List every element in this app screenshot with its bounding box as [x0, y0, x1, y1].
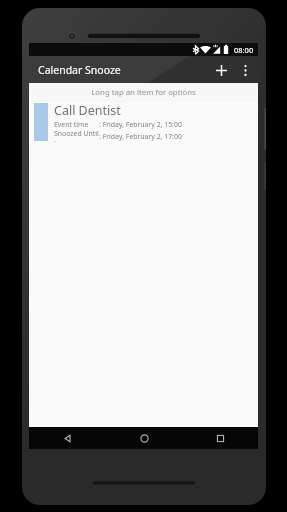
- button[interactable]: Home: [106, 427, 182, 449]
- button[interactable]: More options: [234, 59, 256, 81]
- button[interactable]: Back: [29, 427, 106, 449]
- staticText: : Friday, February 2, 17:00: [99, 132, 182, 141]
- button[interactable]: Add snooze: [208, 57, 234, 83]
- staticText: : Friday, February 2, 15:00: [99, 120, 182, 129]
- staticText: 08:00: [234, 45, 254, 55]
- staticText: Long tap an item for options: [91, 87, 196, 98]
- staticText: Calendar Snooze: [38, 63, 121, 77]
- button[interactable]: Recent apps: [182, 427, 258, 449]
- button[interactable]: Call Dentist: [29, 102, 258, 143]
- staticText: Snoozed Until :: [54, 129, 99, 143]
- staticText: Call Dentist: [54, 102, 121, 119]
- staticText: Event time: [54, 120, 99, 129]
